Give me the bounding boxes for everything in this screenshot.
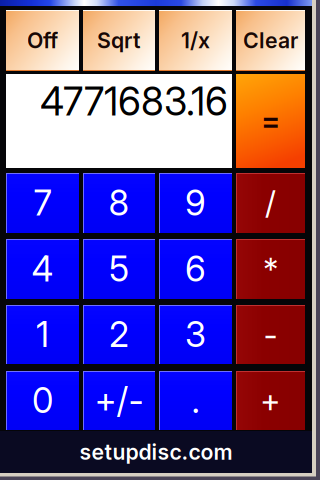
staticText: . [191, 379, 199, 421]
button[interactable]: 1 [6, 305, 79, 364]
button[interactable]: + [236, 371, 305, 430]
button[interactable]: 0 [6, 371, 79, 430]
button[interactable]: = [236, 74, 305, 168]
button[interactable]: 7 [6, 173, 79, 233]
staticText: 4771683.16 [40, 78, 228, 125]
button[interactable]: 8 [83, 173, 155, 233]
button[interactable]: - [236, 305, 305, 364]
staticText: 9 [185, 182, 206, 224]
staticText: / [265, 184, 276, 222]
button[interactable]: +/- [83, 371, 155, 430]
staticText: + [260, 381, 281, 420]
staticText: - [263, 315, 277, 354]
button[interactable]: Off [6, 10, 79, 71]
staticText: Sqrt [97, 28, 141, 53]
button[interactable]: Sqrt [83, 10, 155, 71]
button[interactable]: / [236, 173, 305, 233]
staticText: 6 [185, 248, 206, 290]
staticText: 4 [31, 248, 53, 290]
button[interactable]: 6 [159, 239, 232, 299]
button[interactable]: 4 [6, 239, 79, 299]
button[interactable]: * [236, 239, 305, 299]
staticText: Clear [243, 28, 298, 53]
staticText: 0 [32, 379, 53, 421]
staticText: +/- [94, 379, 143, 421]
staticText: 8 [108, 182, 129, 224]
staticText: = [261, 103, 280, 139]
staticText: * [263, 250, 278, 288]
button[interactable]: . [159, 371, 232, 430]
staticText: 5 [109, 248, 129, 290]
button[interactable]: 1/x [159, 10, 232, 71]
staticText: Off [27, 28, 58, 53]
button[interactable]: 3 [159, 305, 232, 364]
button[interactable]: Clear [236, 10, 305, 71]
staticText: 3 [185, 313, 206, 355]
button[interactable]: 2 [83, 305, 155, 364]
button[interactable]: 5 [83, 239, 155, 299]
staticText: 1/x [181, 28, 210, 53]
staticText: 7 [33, 182, 51, 224]
staticText: 1 [36, 313, 49, 355]
button[interactable]: 9 [159, 173, 232, 233]
staticText: setupdisc.com [79, 439, 232, 465]
staticText: 2 [109, 313, 129, 355]
